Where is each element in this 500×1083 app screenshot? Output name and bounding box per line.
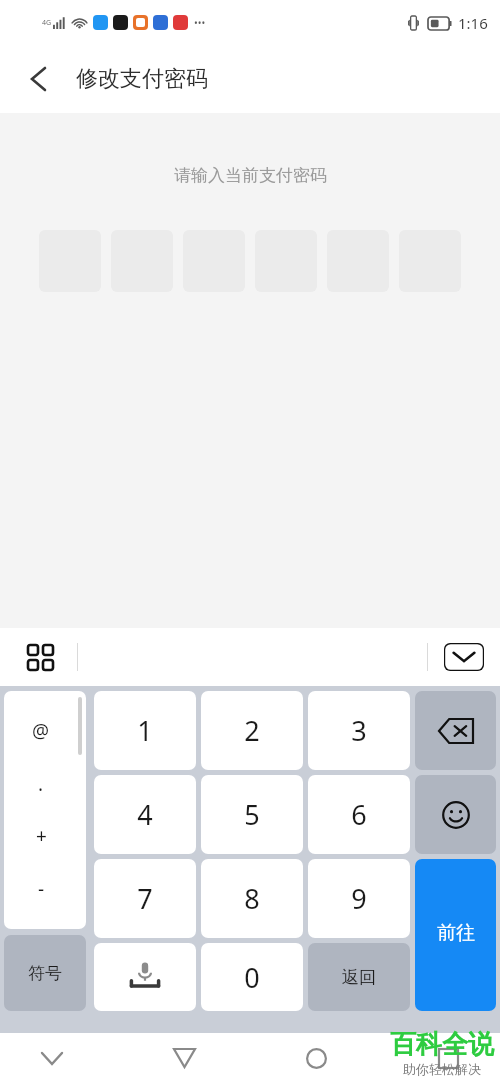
staticText: +: [36, 823, 47, 849]
button[interactable]: Home: [294, 1036, 338, 1080]
button[interactable]: Keyboard layouts: [18, 635, 62, 679]
staticText: 0: [244, 959, 260, 996]
button[interactable]: 5: [201, 775, 303, 854]
button[interactable]: 9: [308, 859, 410, 938]
staticText: 前往: [437, 921, 475, 945]
button[interactable]: 8: [201, 859, 303, 938]
staticText: 7: [137, 880, 153, 917]
staticText: 9: [351, 880, 367, 917]
button[interactable]: Hide keyboard: [444, 643, 484, 671]
staticText: 1: [137, 712, 153, 749]
button[interactable]: 返回: [308, 943, 410, 1011]
staticText: 请输入当前支付密码: [174, 165, 327, 186]
staticText: @: [32, 718, 50, 744]
button[interactable]: 0: [201, 943, 303, 1011]
staticText: .: [38, 771, 44, 797]
staticText: 2: [244, 712, 260, 749]
button[interactable]: 1: [94, 691, 196, 770]
button[interactable]: Back: [162, 1036, 206, 1080]
staticText: 4G: [42, 18, 52, 28]
button[interactable]: Hide: [30, 1036, 74, 1080]
button[interactable]: 2: [201, 691, 303, 770]
staticText: 1:16: [458, 13, 488, 33]
button[interactable]: Backspace: [415, 691, 496, 770]
button[interactable]: 4: [94, 775, 196, 854]
staticText: 8: [244, 880, 260, 917]
button[interactable]: 3: [308, 691, 410, 770]
button[interactable]: 前往: [415, 859, 496, 1011]
button[interactable]: Back: [14, 55, 62, 103]
button[interactable]: Emoji: [415, 775, 496, 854]
staticText: •••: [194, 16, 206, 30]
staticText: 4: [137, 796, 153, 833]
staticText: 6: [351, 796, 367, 833]
button[interactable]: @: [4, 691, 86, 929]
button[interactable]: 7: [94, 859, 196, 938]
button[interactable]: Space, voice input: [94, 943, 196, 1011]
staticText: 3: [351, 712, 367, 749]
button[interactable]: 6: [308, 775, 410, 854]
staticText: -: [38, 876, 45, 902]
staticText: 修改支付密码: [76, 65, 208, 93]
staticText: 符号: [28, 963, 62, 984]
button[interactable]: Recents: [426, 1036, 470, 1080]
staticText: 返回: [342, 967, 376, 988]
button[interactable]: 符号: [4, 935, 86, 1011]
staticText: 助你轻松解决: [403, 1061, 481, 1077]
staticText: 百科全说: [390, 1028, 494, 1061]
staticText: 5: [244, 796, 260, 833]
